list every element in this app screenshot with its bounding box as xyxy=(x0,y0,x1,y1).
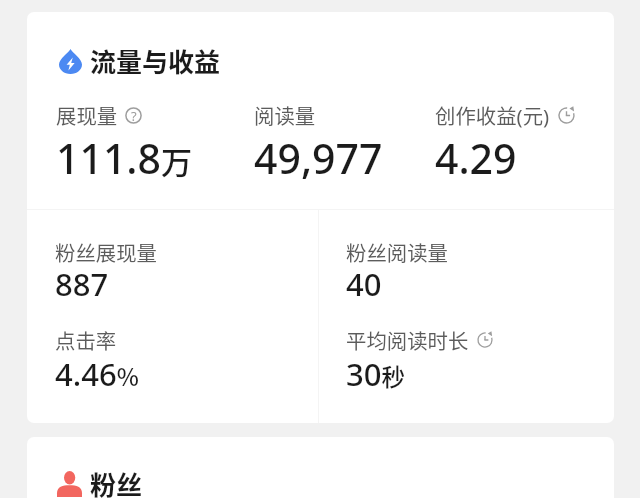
button[interactable]: 历史平均阅读时长 xyxy=(477,332,493,348)
button[interactable]: 历史收益 xyxy=(558,107,575,124)
button[interactable]: 说明 xyxy=(125,107,142,124)
staticText: 887 xyxy=(55,263,109,305)
staticText: 创作收益(元) xyxy=(435,100,550,130)
staticText: 40 xyxy=(346,263,382,305)
staticText: 展现量 xyxy=(56,100,118,130)
button[interactable]: 流量与收益 xyxy=(59,42,221,80)
button[interactable]: 粉丝 xyxy=(57,465,143,498)
staticText: 阅读量 xyxy=(254,100,316,130)
staticText: 49,977 xyxy=(254,130,383,186)
staticText: 粉丝 xyxy=(90,465,143,498)
staticText: 平均阅读时长 xyxy=(346,325,469,355)
staticText: 30秒 xyxy=(346,353,406,395)
staticText: 4.46% xyxy=(55,353,139,395)
staticText: 111.8万 xyxy=(56,130,193,186)
staticText: ? xyxy=(131,107,137,124)
staticText: 4.29 xyxy=(435,130,517,186)
staticText: 粉丝展现量 xyxy=(55,237,157,267)
staticText: 粉丝阅读量 xyxy=(346,237,448,267)
staticText: 点击率 xyxy=(55,325,117,355)
staticText: 流量与收益 xyxy=(90,42,221,80)
